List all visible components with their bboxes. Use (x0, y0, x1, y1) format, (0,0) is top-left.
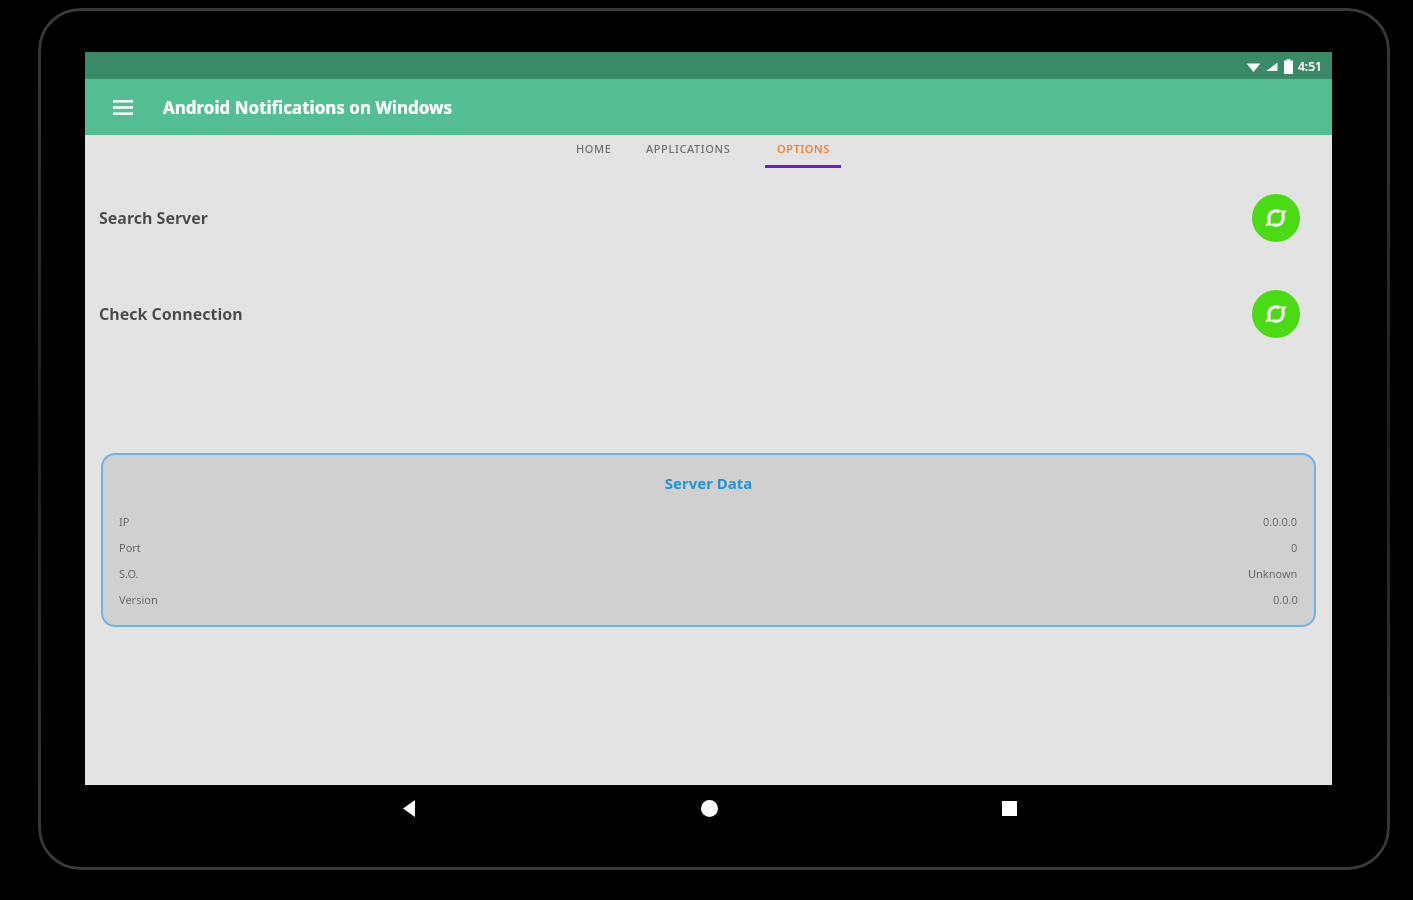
staticText: Search Server (99, 207, 208, 229)
button[interactable]: HOME (570, 141, 618, 168)
button[interactable]: Open navigation drawer (103, 87, 143, 127)
staticText: 0.0.0.0 (1263, 514, 1298, 529)
staticText: 0.0.0 (1273, 592, 1298, 607)
staticText: Unknown (1248, 566, 1298, 581)
staticText: APPLICATIONS (646, 141, 731, 156)
button[interactable]: Check Connection (1252, 290, 1300, 338)
staticText: IP (119, 514, 130, 529)
staticText: HOME (576, 141, 612, 156)
staticText: Check Connection (99, 303, 243, 325)
button[interactable]: Back (259, 785, 559, 831)
button[interactable]: OPTIONS (759, 141, 847, 168)
button[interactable]: Home (559, 785, 859, 831)
button[interactable]: Recent apps (859, 785, 1159, 831)
button[interactable]: Check Connection (85, 287, 1332, 341)
staticText: S.O. (119, 566, 139, 581)
staticText: Android Notifications on Windows (163, 96, 453, 119)
button[interactable]: Search Server (1252, 194, 1300, 242)
button[interactable]: APPLICATIONS (640, 141, 737, 168)
staticText: Server Data (101, 473, 1316, 493)
staticText: Port (119, 540, 141, 555)
button[interactable]: Search Server (85, 191, 1332, 245)
staticText: 4:51 (1298, 58, 1322, 74)
staticText: OPTIONS (777, 141, 830, 156)
staticText: Version (119, 592, 158, 607)
staticText: 0 (1291, 540, 1298, 555)
